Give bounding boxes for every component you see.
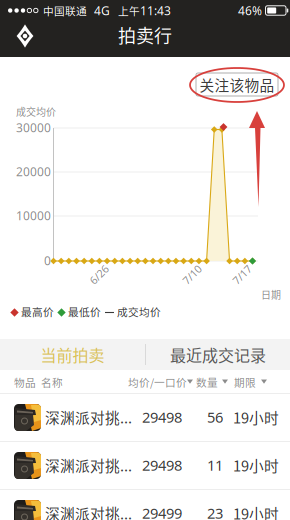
staticText: 成交均价: [117, 304, 161, 319]
staticText: 23: [207, 503, 223, 520]
button[interactable]: 深渊派对挑...: [0, 489, 290, 520]
staticText: 均价/一口价: [128, 374, 187, 390]
staticText: 11: [207, 455, 223, 475]
staticText: 物品: [14, 374, 36, 390]
staticText: 19小时: [233, 406, 279, 428]
staticText: 名称: [41, 374, 63, 390]
staticText: 6/26: [88, 267, 110, 282]
staticText: 上午: [118, 3, 140, 18]
staticText: 11:43: [140, 2, 171, 18]
staticText: 30000: [16, 119, 51, 135]
staticText: 成交均价: [16, 104, 56, 119]
staticText: 拍卖行: [118, 22, 172, 48]
staticText: 29498: [142, 407, 182, 427]
staticText: 7/17: [231, 267, 253, 282]
staticText: 46%: [238, 2, 262, 18]
staticText: 19小时: [233, 454, 279, 476]
staticText: 56: [207, 407, 223, 427]
staticText: 19小时: [233, 502, 279, 520]
button[interactable]: 关注该物品: [196, 73, 278, 96]
button[interactable]: 深渊派对挑...: [0, 441, 290, 489]
staticText: 中国联通: [43, 3, 87, 18]
staticText: 最近成交记录: [170, 343, 266, 366]
staticText: 29499: [142, 503, 182, 520]
button[interactable]: 深渊派对挑...: [0, 393, 290, 441]
button[interactable]: 最近成交记录: [146, 339, 290, 370]
staticText: 最低价: [68, 304, 101, 319]
staticText: 深渊派对挑...: [45, 406, 132, 428]
staticText: 4G: [94, 2, 110, 18]
staticText: 最高价: [21, 304, 54, 319]
staticText: 0: [44, 252, 51, 268]
staticText: 29498: [142, 455, 182, 475]
button[interactable]: 菜单: [11, 22, 39, 50]
staticText: 当前拍卖: [40, 343, 104, 366]
staticText: 日期: [261, 287, 281, 302]
staticText: 20000: [16, 163, 51, 179]
staticText: 数量: [196, 374, 218, 390]
staticText: 7/10: [181, 267, 203, 282]
staticText: 深渊派对挑...: [45, 502, 132, 520]
staticText: 关注该物品: [199, 74, 274, 95]
button[interactable]: 当前拍卖: [0, 339, 145, 370]
staticText: 10000: [16, 207, 51, 223]
staticText: 期限: [234, 374, 256, 390]
staticText: 深渊派对挑...: [45, 454, 132, 476]
